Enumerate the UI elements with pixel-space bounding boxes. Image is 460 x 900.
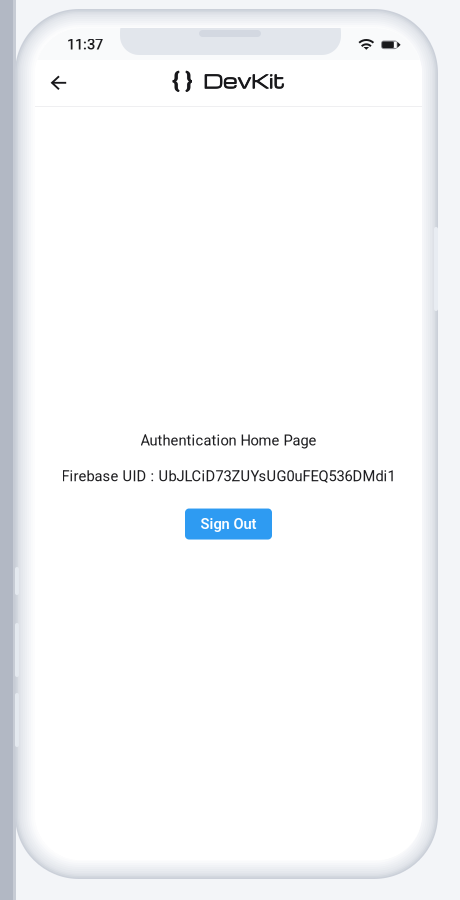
staticText: }	[185, 67, 192, 93]
staticText: Firebase UID : UbJLCiD73ZUYsUG0uFEQ536DM…	[61, 468, 395, 485]
staticText: }	[185, 67, 192, 93]
staticText: {	[172, 67, 179, 93]
staticText: DevKit	[203, 67, 285, 93]
staticText: Sign Out	[200, 516, 256, 532]
staticText: DevKit	[203, 67, 285, 94]
staticText: {	[172, 67, 179, 93]
staticText: Authentication Home Page	[140, 432, 316, 449]
staticText: 11:37	[67, 36, 103, 53]
staticText: DevKit	[203, 67, 285, 93]
button[interactable]: Back	[37, 61, 81, 105]
button[interactable]: Sign Out	[185, 508, 272, 539]
